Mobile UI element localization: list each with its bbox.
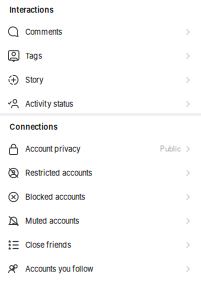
- staticText: Muted accounts: [25, 216, 79, 225]
- button[interactable]: Tags: [0, 44, 201, 68]
- staticText: Restricted accounts: [25, 168, 92, 177]
- staticText: Account privacy: [25, 144, 80, 153]
- staticText: Story: [25, 75, 43, 84]
- staticText: Blocked accounts: [25, 192, 85, 201]
- button[interactable]: Account privacy: [0, 137, 201, 161]
- staticText: Public: [160, 145, 181, 153]
- button[interactable]: Restricted accounts: [0, 161, 201, 185]
- staticText: Interactions: [9, 5, 53, 14]
- button[interactable]: Comments: [0, 20, 201, 44]
- staticText: Accounts you follow: [25, 264, 93, 273]
- staticText: Comments: [25, 27, 62, 36]
- button[interactable]: Story: [0, 68, 201, 92]
- staticText: Activity status: [25, 99, 73, 108]
- staticText: Connections: [9, 122, 57, 131]
- button[interactable]: Activity status: [0, 92, 201, 116]
- staticText: Close friends: [25, 240, 71, 249]
- button[interactable]: Accounts you follow: [0, 257, 201, 281]
- button[interactable]: Muted accounts: [0, 209, 201, 233]
- button[interactable]: Blocked accounts: [0, 185, 201, 209]
- staticText: Tags: [25, 51, 42, 60]
- button[interactable]: Close friends: [0, 233, 201, 257]
